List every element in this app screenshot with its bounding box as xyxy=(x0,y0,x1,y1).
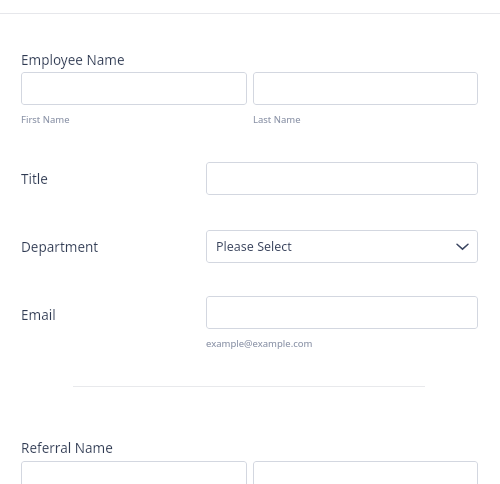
staticText: Title xyxy=(21,170,48,188)
staticText: Employee Name xyxy=(21,51,125,69)
button[interactable] xyxy=(21,461,247,484)
button[interactable] xyxy=(253,461,478,484)
staticText: Email xyxy=(21,306,56,324)
button[interactable] xyxy=(206,296,478,329)
staticText: example@example.com xyxy=(206,337,313,350)
staticText: Department xyxy=(21,238,99,256)
button[interactable] xyxy=(206,162,478,195)
button[interactable]: Please Select xyxy=(206,230,478,263)
staticText: Please Select xyxy=(216,238,292,255)
staticText: Last Name xyxy=(253,113,301,126)
other: Open department list xyxy=(457,243,468,250)
staticText: Referral Name xyxy=(21,439,113,457)
button[interactable] xyxy=(253,72,478,105)
staticText: First Name xyxy=(21,113,70,126)
button[interactable] xyxy=(21,72,247,105)
